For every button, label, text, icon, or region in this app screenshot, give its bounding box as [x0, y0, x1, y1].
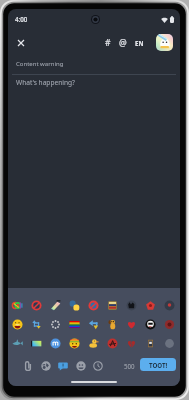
staticText: Content warning — [16, 60, 64, 68]
button[interactable]: Emoji 12 — [46, 315, 65, 333]
button[interactable]: Close — [12, 34, 30, 52]
button[interactable]: Schedule post — [90, 358, 106, 374]
button[interactable]: Emoji 27 — [160, 334, 179, 352]
button[interactable]: Emoji 4 — [65, 296, 84, 314]
button[interactable]: Emoji 25 — [122, 334, 141, 352]
button[interactable]: Emoji 24 — [103, 334, 122, 352]
button[interactable]: TOOT! — [140, 358, 176, 371]
button[interactable]: Emoji 14 — [84, 315, 103, 333]
staticText: TOOT! — [149, 361, 168, 369]
button[interactable]: Emoji 13 — [65, 315, 84, 333]
staticText: EN — [135, 39, 144, 47]
button[interactable]: Emoji 2 — [27, 296, 46, 314]
button[interactable]: Emoji 19 — [8, 334, 27, 352]
button[interactable]: Account avatar — [156, 34, 173, 51]
button[interactable]: Emoji 22 — [65, 334, 84, 352]
button[interactable]: Emoji 26 — [141, 334, 160, 352]
button[interactable]: Emoji 8 — [141, 296, 160, 314]
staticText: 500 — [124, 362, 135, 370]
button[interactable]: Add media attachment — [20, 358, 36, 374]
staticText: @ — [119, 37, 127, 49]
button[interactable]: Mention someone — [114, 34, 131, 51]
button[interactable]: Emoji 21 — [46, 334, 65, 352]
button[interactable]: Insert emoji — [73, 358, 89, 374]
button[interactable]: Emoji 11 — [27, 315, 46, 333]
button[interactable]: Emoji 6 — [103, 296, 122, 314]
button[interactable]: Emoji 3 — [46, 296, 65, 314]
button[interactable]: Emoji 9 — [160, 296, 179, 314]
button[interactable]: Emoji 1 — [8, 296, 27, 314]
button[interactable]: Emoji 16 — [122, 315, 141, 333]
button[interactable]: Emoji 20 — [27, 334, 46, 352]
staticText: What's happening? — [16, 78, 75, 87]
button[interactable]: Emoji 18 — [160, 315, 179, 333]
button[interactable]: Post visibility — [38, 358, 54, 374]
button[interactable]: Emoji 17 — [141, 315, 160, 333]
staticText: # — [105, 37, 111, 49]
button[interactable]: Emoji 7 — [122, 296, 141, 314]
button[interactable]: Content warning — [55, 358, 71, 374]
button[interactable]: Post language English — [131, 34, 148, 51]
button[interactable]: Add hashtag — [99, 34, 116, 51]
button[interactable]: Emoji 5 — [84, 296, 103, 314]
button[interactable]: Emoji 10 — [8, 315, 27, 333]
button[interactable]: Emoji 15 — [103, 315, 122, 333]
button[interactable]: Emoji 23 — [84, 334, 103, 352]
staticText: 4:00 — [15, 15, 28, 23]
